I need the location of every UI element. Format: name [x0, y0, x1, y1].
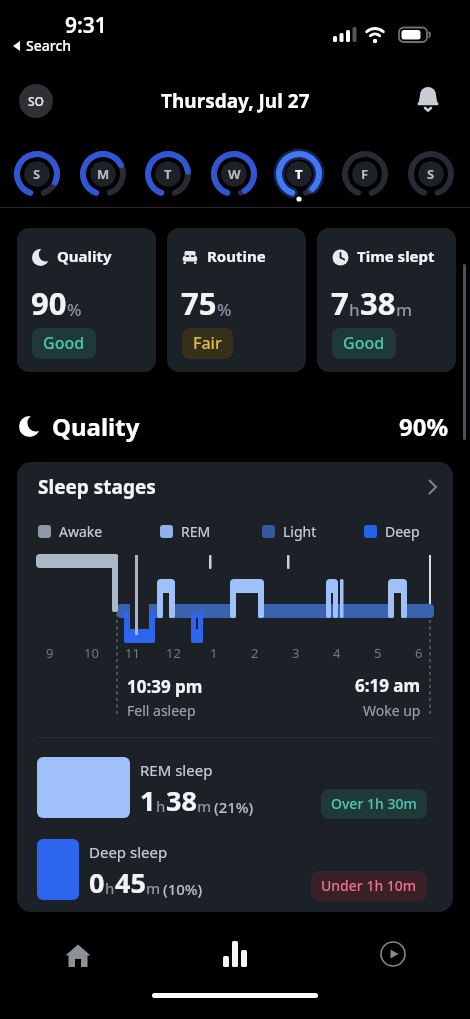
button[interactable]: F [339, 148, 391, 206]
staticText: Routine [207, 246, 266, 266]
staticText: W [228, 165, 241, 183]
staticText: 12 [166, 644, 181, 662]
staticText: REM [181, 522, 211, 541]
staticText: 6:19 am [355, 674, 421, 697]
staticText: Fair [193, 332, 222, 354]
button[interactable] [415, 85, 443, 113]
staticText: 11 [125, 644, 140, 662]
staticText: 2 [251, 644, 259, 662]
staticText: 6 [415, 644, 423, 662]
staticText: m [396, 298, 413, 321]
staticText: 0 [89, 864, 105, 901]
staticText: 1 [210, 644, 218, 662]
staticText: 10 [84, 644, 99, 662]
staticText: m [146, 878, 161, 898]
staticText: Time slept [357, 246, 435, 266]
staticText: F [361, 165, 369, 183]
staticText: Awake [59, 522, 103, 541]
button[interactable]: Sleep stages [38, 474, 438, 500]
staticText: SO [28, 93, 45, 109]
staticText: (10%) [163, 879, 203, 899]
button[interactable]: T [142, 148, 194, 206]
staticText: Woke up [363, 701, 421, 720]
button[interactable]: S [405, 148, 457, 206]
button[interactable] [215, 934, 255, 974]
staticText: Over 1h 30m [331, 794, 417, 813]
staticText: (21%) [214, 797, 254, 817]
button[interactable]: Time slept [317, 228, 456, 372]
staticText: Deep [385, 522, 420, 541]
staticText: Deep sleep [89, 842, 168, 862]
staticText: Light [283, 522, 317, 541]
button[interactable]: Search [12, 36, 72, 55]
staticText: Search [26, 36, 72, 55]
staticText: T [295, 165, 303, 183]
staticText: 7 [331, 282, 349, 324]
staticText: 38 [360, 282, 396, 324]
staticText: S [427, 165, 435, 183]
staticText: 3 [292, 644, 300, 662]
button[interactable] [58, 936, 98, 976]
staticText: % [217, 298, 232, 321]
staticText: Good [43, 332, 85, 354]
staticText: 5 [374, 644, 382, 662]
staticText: 45 [115, 864, 146, 901]
staticText: 90% [399, 410, 449, 443]
staticText: Quality [52, 410, 140, 443]
button[interactable]: W [208, 148, 260, 206]
staticText: 75 [181, 282, 217, 324]
staticText: % [67, 298, 82, 321]
staticText: 4 [333, 644, 341, 662]
button[interactable]: SO [19, 84, 53, 118]
button[interactable] [373, 934, 413, 974]
staticText: Quality [57, 246, 112, 266]
staticText: REM sleep [140, 760, 213, 780]
button[interactable]: Over 1h 30m [321, 789, 427, 819]
staticText: 9 [46, 644, 54, 662]
staticText: 1 [140, 782, 156, 819]
staticText: h [105, 878, 115, 898]
staticText: 90 [31, 282, 67, 324]
staticText: S [33, 165, 41, 183]
staticText: h [349, 298, 360, 321]
staticText: m [197, 796, 212, 816]
staticText: 10:39 pm [127, 675, 203, 698]
staticText: Good [343, 332, 385, 354]
button[interactable]: Quality [17, 228, 156, 372]
staticText: Under 1h 10m [321, 876, 417, 895]
staticText: Thursday, Jul 27 [161, 88, 310, 114]
staticText: Sleep stages [38, 474, 156, 500]
button[interactable]: M [77, 148, 129, 206]
button[interactable]: T [273, 148, 325, 206]
staticText: Fell asleep [127, 701, 196, 720]
staticText: M [97, 165, 110, 183]
staticText: 38 [166, 782, 197, 819]
staticText: T [164, 165, 172, 183]
button[interactable]: Under 1h 10m [311, 871, 427, 901]
button[interactable]: S [11, 148, 63, 206]
button[interactable]: Routine [167, 228, 306, 372]
staticText: h [156, 796, 166, 816]
staticText: 9:31 [65, 11, 107, 40]
